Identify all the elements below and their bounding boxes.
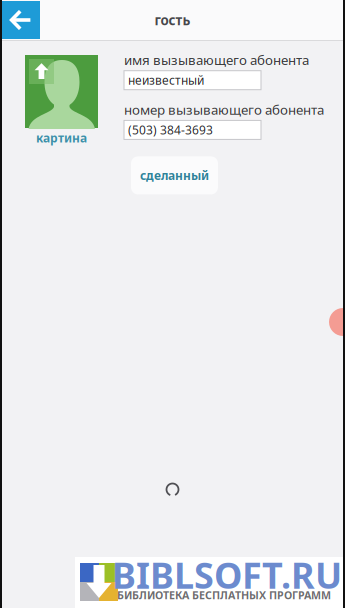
staticText: номер вызывающего абонента: [124, 101, 324, 118]
staticText: сделанный: [140, 167, 209, 183]
staticText: неизвестный: [128, 72, 204, 88]
staticText: гость: [154, 11, 190, 29]
staticText: (503) 384-3693: [128, 122, 213, 138]
staticText: BIBLSOFT.RU: [112, 551, 342, 599]
staticText: картина: [36, 130, 87, 146]
staticText: имя вызывающего абонента: [124, 51, 309, 69]
button[interactable]: сделанный: [131, 156, 218, 194]
button[interactable]: картина: [25, 55, 98, 146]
staticText: БИБЛИОТЕКА БЕСПЛАТНЫХ ПРОГРАММ: [117, 588, 331, 602]
button[interactable]: Back: [2, 1, 40, 39]
